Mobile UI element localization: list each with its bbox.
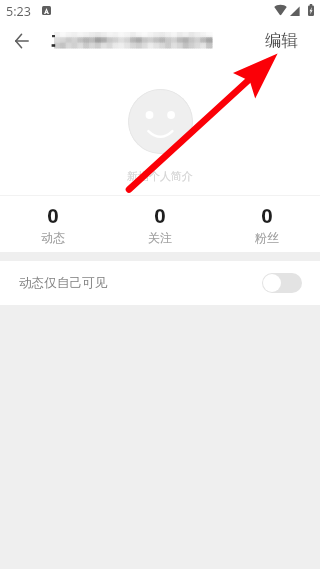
staticText: 0 xyxy=(261,202,273,229)
staticText: 动态 xyxy=(41,230,65,245)
staticText: 0 xyxy=(154,202,166,229)
staticText: 粉丝 xyxy=(255,230,279,245)
staticText: 新增个人简介 xyxy=(127,169,193,183)
button[interactable]: 0 xyxy=(213,196,320,252)
staticText: 0 xyxy=(47,202,59,229)
button[interactable]: 动态仅自己可见 xyxy=(0,261,320,305)
button[interactable]: 0 xyxy=(106,196,213,252)
button[interactable]: 新增个人简介 xyxy=(127,169,193,183)
button[interactable]: 编辑 xyxy=(265,20,298,60)
staticText: 编辑 xyxy=(265,30,298,51)
button[interactable]: 0 xyxy=(0,196,106,252)
button[interactable]: Back xyxy=(2,22,42,62)
button[interactable]: Avatar xyxy=(128,89,193,154)
staticText: 动态仅自己可见 xyxy=(19,275,108,291)
staticText: 5:23 xyxy=(6,3,31,20)
staticText: 关注 xyxy=(148,230,172,245)
